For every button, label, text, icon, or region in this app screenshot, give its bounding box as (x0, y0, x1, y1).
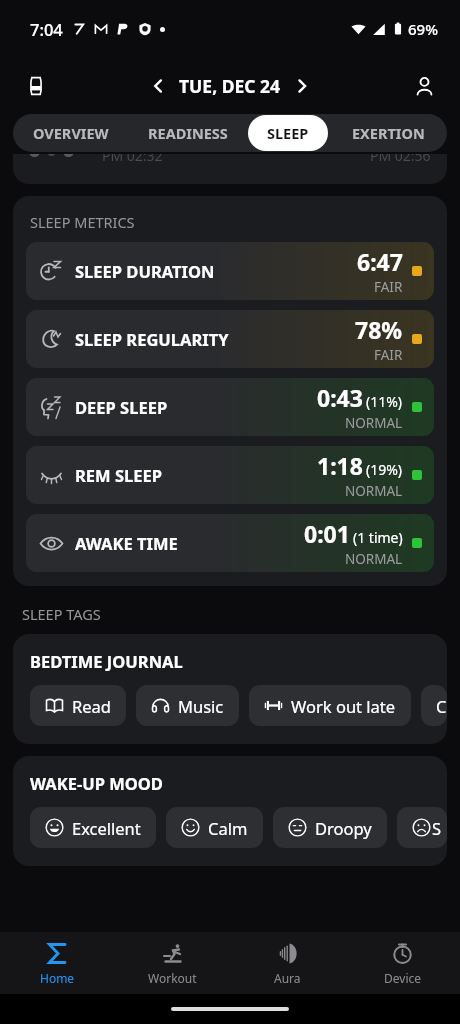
button[interactable]: Previous day (141, 69, 175, 103)
staticText: 78% (355, 314, 403, 345)
staticText: EXERTION (352, 123, 425, 143)
staticText: NORMAL (345, 550, 403, 568)
staticText: Workout (148, 970, 197, 986)
staticText: NORMAL (345, 414, 403, 432)
staticText: PM 02:56 (370, 154, 431, 165)
staticText: BEDTIME JOURNAL (30, 650, 183, 672)
button[interactable]: OVERVIEW (15, 115, 127, 151)
staticText: Aura (274, 970, 301, 986)
staticText: SLEEP REGULARITY (75, 328, 229, 350)
staticText: AWAKE TIME (75, 532, 178, 554)
button[interactable]: AWAKE TIME (26, 514, 434, 572)
staticText: SLEEP METRICS (30, 212, 135, 232)
staticText: FAIR (374, 278, 403, 296)
button[interactable]: DEEP SLEEP (26, 378, 434, 436)
staticText: Excellent (72, 817, 141, 839)
staticText: 1:18 (317, 450, 363, 481)
staticText: Work out late (291, 695, 396, 717)
button[interactable]: PM 02:32 (13, 154, 447, 184)
staticText: SLEEP DURATION (75, 260, 215, 282)
button[interactable]: Calm (166, 807, 263, 848)
staticText: Device (384, 970, 422, 986)
button[interactable]: SLEEP DURATION (26, 242, 434, 300)
button[interactable]: REM SLEEP (26, 446, 434, 504)
button[interactable]: Sl (397, 807, 447, 848)
button[interactable]: Music (136, 685, 239, 726)
button[interactable]: SLEEP (248, 115, 328, 151)
button[interactable]: Cof (421, 685, 447, 726)
button[interactable]: Device (345, 932, 460, 994)
staticText: 0:01 (304, 518, 350, 549)
button[interactable]: READINESS (131, 115, 244, 151)
staticText: SLEEP (267, 123, 309, 143)
staticText: OVERVIEW (33, 123, 109, 143)
button[interactable]: Next day (285, 69, 319, 103)
button[interactable]: Droopy (273, 807, 387, 848)
staticText: SLEEP TAGS (22, 604, 101, 624)
staticText: Home (40, 970, 75, 986)
button[interactable]: Home (0, 932, 115, 994)
button[interactable]: Aura (230, 932, 345, 994)
button[interactable]: Excellent (30, 807, 156, 848)
staticText: Calm (208, 817, 248, 839)
staticText: (1 time) (353, 528, 403, 547)
staticText: 0:43 (317, 382, 363, 413)
staticText: TUE, DEC 24 (179, 74, 281, 98)
staticText: FAIR (374, 346, 403, 364)
button[interactable]: Watch device (14, 64, 58, 108)
button[interactable]: Read (30, 685, 126, 726)
staticText: Music (178, 695, 224, 717)
button[interactable]: SLEEP REGULARITY (26, 310, 434, 368)
staticText: 69% (408, 19, 438, 39)
staticText: NORMAL (345, 482, 403, 500)
staticText: (19%) (366, 460, 403, 479)
button[interactable]: EXERTION (332, 115, 445, 151)
staticText: READINESS (148, 123, 228, 143)
staticText: WAKE-UP MOOD (30, 772, 163, 794)
staticText: Read (72, 695, 111, 717)
staticText: 6:47 (357, 246, 403, 277)
button[interactable]: Profile (402, 64, 446, 108)
staticText: DEEP SLEEP (75, 396, 168, 418)
button[interactable]: Work out late (249, 685, 411, 726)
staticText: PM 02:32 (102, 154, 163, 165)
staticText: Droopy (315, 817, 372, 839)
staticText: (11%) (366, 392, 403, 411)
button[interactable]: Workout (115, 932, 230, 994)
staticText: REM SLEEP (75, 464, 162, 486)
staticText: 7:04 (30, 18, 63, 40)
